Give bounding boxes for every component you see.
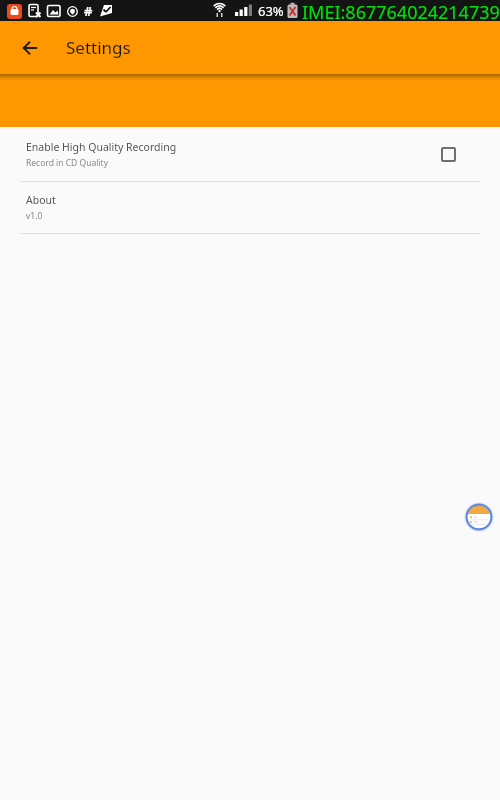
staticText: Record in CD Quality <box>26 157 108 169</box>
staticText: Enable High Quality Recording <box>26 140 177 154</box>
staticText: Settings <box>66 36 131 59</box>
staticText: # <box>84 2 93 20</box>
button[interactable]: About <box>0 182 500 233</box>
staticText: About <box>26 193 56 207</box>
button[interactable]: Enable High Quality Recording <box>0 127 500 181</box>
button[interactable] <box>441 147 456 162</box>
staticText: v1.0 <box>26 210 43 222</box>
staticText: IMEI:867764024214739 <box>302 0 500 21</box>
staticText: 63% <box>258 2 284 20</box>
button[interactable] <box>14 32 46 64</box>
